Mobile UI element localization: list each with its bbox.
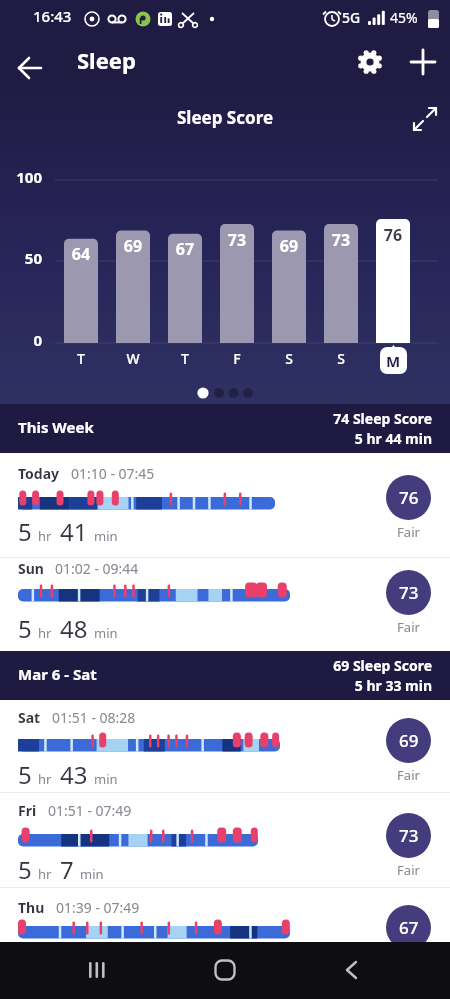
staticText: hr <box>38 624 52 642</box>
staticText: 7 <box>60 853 74 886</box>
staticText: Fair <box>386 523 431 541</box>
staticText: 73 <box>315 229 367 251</box>
button[interactable] <box>203 948 247 992</box>
staticText: 74 Sleep Score <box>232 409 432 428</box>
button[interactable]: Sat <box>0 700 450 793</box>
staticText: min <box>80 865 104 883</box>
staticText: Fair <box>386 861 431 879</box>
staticText: Sun <box>18 559 44 578</box>
button[interactable] <box>75 948 119 992</box>
staticText: hr <box>38 527 52 545</box>
staticText: 73 <box>211 229 263 251</box>
staticText: min <box>80 970 104 988</box>
staticText: 64 <box>55 243 107 265</box>
staticText: 50 <box>14 248 42 268</box>
staticText: This Week <box>18 417 94 437</box>
staticText: Sleep Score <box>0 106 450 129</box>
staticText: 01:10 - 07:45 <box>71 464 155 483</box>
staticText: Today <box>18 464 60 483</box>
staticText: W <box>107 349 159 368</box>
staticText: 48 <box>60 612 88 645</box>
staticText: 69 Sleep Score <box>232 656 432 675</box>
button[interactable]: Thu <box>0 888 450 999</box>
button[interactable] <box>352 44 388 80</box>
staticText: 0 <box>14 330 42 350</box>
staticText: 5 <box>18 758 32 791</box>
staticText: 01:51 - 07:49 <box>48 801 132 820</box>
staticText: min <box>94 770 118 788</box>
staticText: Sleep <box>77 45 136 75</box>
staticText: 5 <box>18 612 32 645</box>
button[interactable] <box>330 948 374 992</box>
staticText: 73 <box>399 824 419 847</box>
staticText: 16:43 <box>33 6 72 26</box>
staticText: Thu <box>18 898 45 917</box>
staticText: Sat <box>18 708 41 727</box>
staticText: 41 <box>60 515 88 548</box>
staticText: 76 <box>399 486 419 509</box>
staticText: hr <box>38 770 52 788</box>
staticText: T <box>55 349 107 368</box>
staticText: 67 <box>399 916 419 939</box>
button[interactable]: Today <box>0 453 450 558</box>
staticText: 01:39 - 07:49 <box>56 898 140 917</box>
staticText: Mar 6 - Sat <box>18 664 97 684</box>
staticText: 69 <box>107 235 159 257</box>
staticText: Fair <box>386 766 431 784</box>
button[interactable] <box>10 48 50 88</box>
staticText: 43 <box>60 758 88 791</box>
staticText: 67 <box>159 238 211 260</box>
staticText: 5G <box>342 8 361 27</box>
staticText: min <box>94 527 118 545</box>
staticText: Fri <box>18 801 37 820</box>
staticText: M <box>386 351 401 371</box>
staticText: 45% <box>390 8 418 27</box>
button[interactable]: Sun <box>0 558 450 651</box>
staticText: hr <box>38 865 52 883</box>
staticText: F <box>211 349 263 368</box>
button[interactable]: Fri <box>0 793 450 888</box>
staticText: S <box>263 349 315 368</box>
staticText: 5 hr 33 min <box>232 676 432 695</box>
staticText: 5 <box>18 515 32 548</box>
staticText: 73 <box>399 581 419 604</box>
staticText: 5 hr 44 min <box>232 429 432 448</box>
staticText: Fair <box>386 618 431 636</box>
staticText: 69 <box>263 235 315 257</box>
staticText: 100 <box>14 167 42 187</box>
staticText: S <box>315 349 367 368</box>
button[interactable] <box>405 44 441 80</box>
staticText: min <box>94 624 118 642</box>
staticText: 76 <box>367 224 419 246</box>
staticText: 01:02 - 09:44 <box>55 559 139 578</box>
staticText: T <box>159 349 211 368</box>
staticText: 69 <box>399 729 419 752</box>
staticText: 5 <box>18 853 32 886</box>
button[interactable] <box>408 102 442 136</box>
staticText: 01:51 - 08:28 <box>52 708 136 727</box>
